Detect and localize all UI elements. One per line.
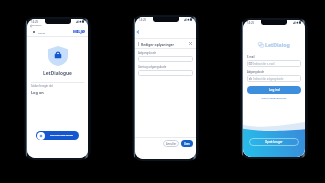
button[interactable]: Close xyxy=(188,41,193,46)
button[interactable]: Beskeder xyxy=(30,24,42,27)
button[interactable] xyxy=(138,70,193,76)
staticText: Annuller xyxy=(166,142,177,146)
staticText: 14:25 xyxy=(31,20,39,23)
button[interactable]: Log ind xyxy=(247,86,301,94)
staticText: LOG IND MED MITID xyxy=(50,134,74,137)
staticText: Adgangskode xyxy=(138,51,157,55)
button[interactable]: Opret bruger xyxy=(249,138,299,146)
staticText: E-mail xyxy=(247,55,255,59)
staticText: MILJØ xyxy=(73,29,85,35)
button[interactable]: Back xyxy=(135,29,141,35)
button[interactable] xyxy=(138,56,193,62)
staticText: Log ind xyxy=(269,88,280,92)
staticText: 14:25 xyxy=(247,21,255,24)
button[interactable]: Address bar xyxy=(33,29,85,35)
staticText: LetDialog xyxy=(265,41,290,48)
button[interactable]: LOG IND MED MITID xyxy=(36,131,79,140)
staticText: Sådan foregår det xyxy=(31,84,53,88)
staticText: Indtast din adgangskode xyxy=(253,77,284,81)
staticText: Log on xyxy=(31,90,44,95)
staticText: Opret bruger xyxy=(265,140,283,144)
button[interactable]: Gem xyxy=(181,140,193,147)
staticText: LetDialogue xyxy=(27,70,88,77)
button[interactable]: Glemt adgangskode? xyxy=(247,96,301,99)
staticText: Adgangskode xyxy=(247,70,265,74)
staticText: Beskeder xyxy=(32,24,42,27)
staticText: 14:25 xyxy=(139,18,147,21)
button[interactable]: Indtast din e-mail xyxy=(249,60,299,67)
staticText: site.dk xyxy=(38,31,46,34)
staticText: Gentag adgangskode xyxy=(138,65,167,69)
staticText: Rediger oplysninger xyxy=(141,42,175,46)
staticText: Gem xyxy=(184,142,190,146)
staticText: Indtast din e-mail xyxy=(253,62,275,66)
button[interactable]: Indtast din adgangskode xyxy=(249,75,299,82)
button[interactable]: Annuller xyxy=(163,140,179,147)
